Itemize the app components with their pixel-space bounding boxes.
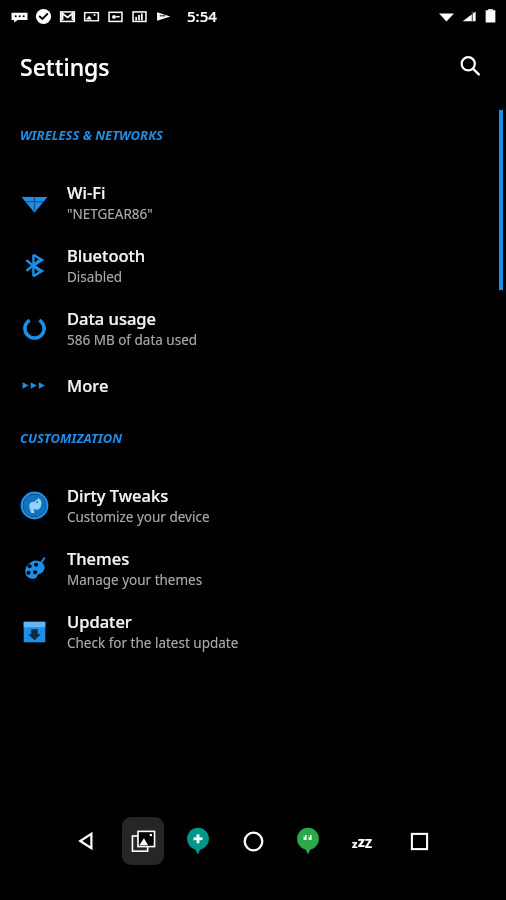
button[interactable]: New message: [174, 817, 222, 865]
button[interactable]: Home: [228, 816, 278, 866]
button[interactable]: Updater: [0, 599, 506, 662]
staticText: Dirty Tweaks: [67, 484, 169, 506]
staticText: 586 MB of data used: [67, 331, 198, 349]
button[interactable]: Back: [60, 814, 114, 868]
button[interactable]: Recents: [392, 814, 446, 868]
staticText: z: [352, 836, 358, 851]
button[interactable]: Wi-Fi: [0, 170, 506, 233]
staticText: CUSTOMIZATION: [20, 429, 123, 447]
staticText: "NETGEAR86": [67, 205, 153, 223]
button[interactable]: Data usage: [0, 296, 506, 359]
staticText: Updater: [67, 610, 132, 632]
staticText: z: [358, 832, 365, 851]
staticText: Wi-Fi: [67, 181, 106, 203]
staticText: Data usage: [67, 307, 157, 329]
staticText: WIRELESS & NETWORKS: [20, 126, 164, 144]
button[interactable]: Themes: [0, 536, 506, 599]
staticText: Z: [365, 835, 372, 851]
button[interactable]: Hangouts: [284, 817, 332, 865]
staticText: Themes: [67, 547, 130, 569]
staticText: Settings: [20, 51, 110, 82]
staticText: Customize your device: [67, 508, 210, 526]
button[interactable]: Search: [448, 44, 492, 88]
button[interactable]: Bluetooth: [0, 233, 506, 296]
staticText: Manage your themes: [67, 571, 203, 589]
button[interactable]: Gallery: [122, 817, 164, 865]
button[interactable]: Dirty Tweaks: [0, 473, 506, 536]
button[interactable]: More: [0, 359, 506, 411]
staticText: 5:54: [187, 6, 217, 26]
staticText: More: [67, 374, 109, 396]
staticText: Disabled: [67, 268, 123, 286]
staticText: Bluetooth: [67, 244, 146, 266]
button[interactable]: Do not disturb: [336, 815, 388, 867]
staticText: Check for the latest update: [67, 634, 239, 652]
